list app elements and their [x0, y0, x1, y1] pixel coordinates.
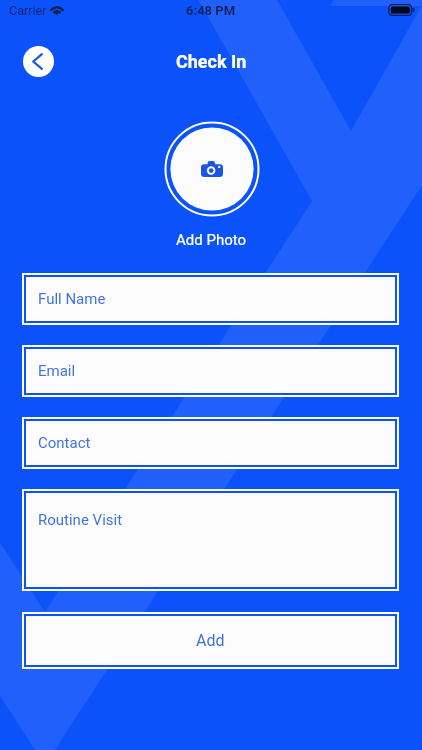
staticText: 6:48 PM	[186, 3, 236, 18]
button[interactable]: Contact	[26, 421, 395, 465]
staticText: Carrier	[9, 3, 47, 18]
staticText: Contact	[38, 434, 91, 452]
staticText: Email	[38, 362, 76, 380]
staticText: Routine Visit	[38, 511, 123, 529]
button[interactable]: Full Name	[26, 277, 395, 321]
button[interactable]: Add	[26, 616, 395, 665]
staticText: Add	[196, 631, 225, 650]
staticText: Full Name	[38, 290, 106, 308]
button[interactable]: Add Photo	[164, 121, 260, 217]
staticText: Check In	[176, 51, 247, 72]
staticText: Add Photo	[176, 231, 247, 249]
button[interactable]: Routine Visit	[26, 493, 395, 587]
button[interactable]: Email	[26, 349, 395, 393]
button[interactable]: Back	[23, 46, 54, 77]
